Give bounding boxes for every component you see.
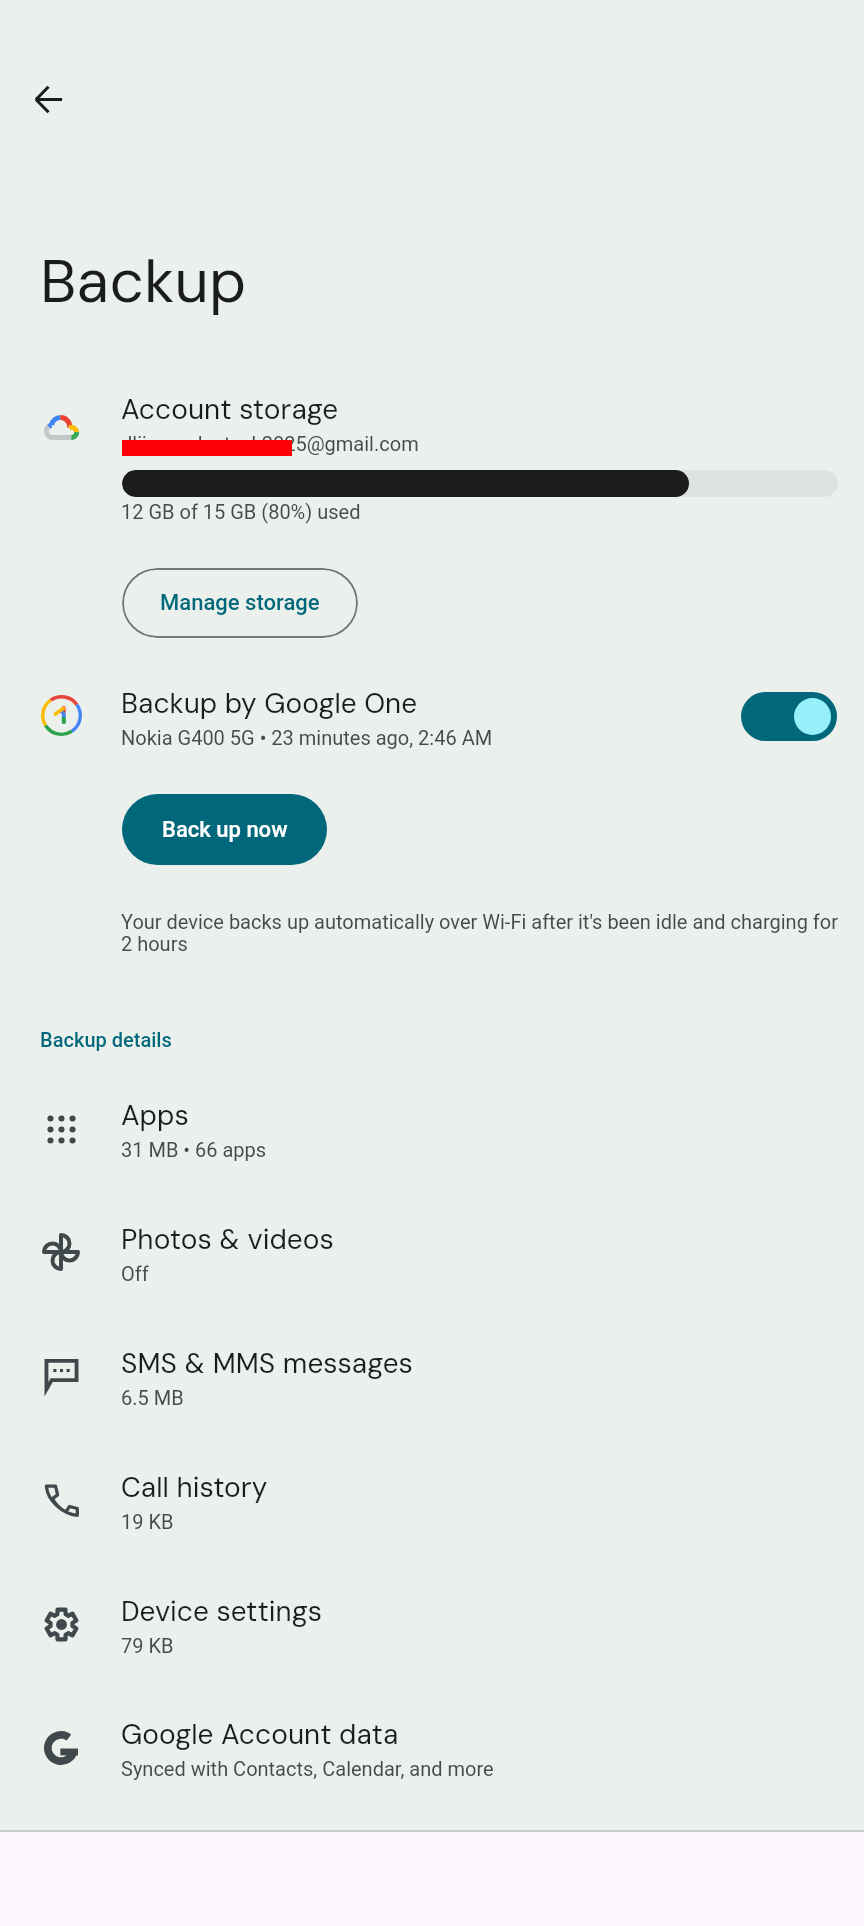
staticText: Backup by Google One [121,685,418,721]
button[interactable]: SMS & MMS messages [0,1314,864,1438]
button[interactable]: Call history [0,1438,864,1562]
staticText: SMS & MMS messages [121,1345,413,1381]
staticText: Back up now [162,817,288,843]
staticText: dlijonaudentesk2025@gmail.com [121,432,419,455]
staticText: Account storage [121,391,339,427]
button[interactable]: Google Account data [0,1685,864,1809]
button[interactable]: Photos & videos [0,1190,864,1314]
button[interactable]: Device settings [0,1562,864,1686]
staticText: Your device backs up automatically over … [121,910,843,956]
staticText: 6.5 MB [121,1386,184,1409]
staticText: Photos & videos [121,1221,334,1257]
button[interactable]: Apps [0,1066,864,1190]
staticText: Nokia G400 5G • 23 minutes ago, 2:46 AM [121,726,493,749]
staticText: Google Account data [121,1716,399,1752]
staticText: Call history [121,1469,268,1505]
button[interactable]: Manage storage [122,568,358,638]
staticText: 79 KB [121,1634,174,1657]
staticText: Apps [121,1097,189,1133]
staticText: 31 MB • 66 apps [121,1138,267,1161]
button[interactable]: Backup by Google One toggle [741,692,837,741]
staticText: 19 KB [121,1510,174,1533]
staticText: Device settings [121,1593,323,1629]
staticText: Manage storage [160,590,320,616]
button[interactable]: Back [14,65,82,133]
staticText: Synced with Contacts, Calendar, and more [121,1757,494,1780]
button[interactable]: Back up now [122,794,327,865]
staticText: 12 GB of 15 GB (80%) used [121,500,361,523]
staticText: Backup [40,242,247,320]
staticText: Off [121,1262,149,1285]
staticText: Backup details [40,1028,172,1051]
